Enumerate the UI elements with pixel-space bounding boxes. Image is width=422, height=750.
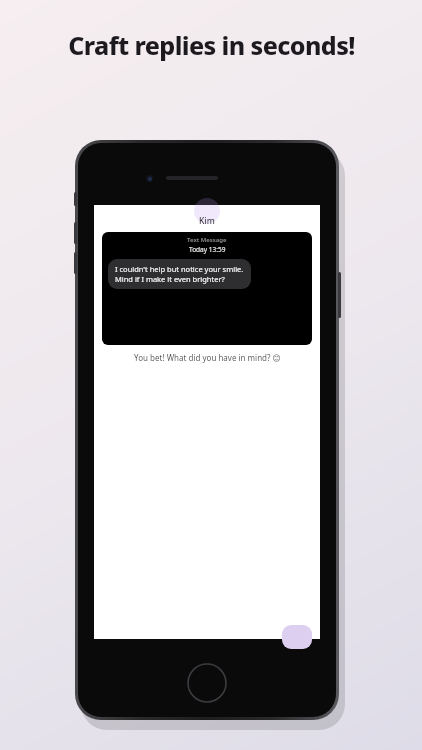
button[interactable]: Text Message <box>102 232 312 345</box>
staticText: Kim <box>199 215 215 227</box>
staticText: I couldn't help but notice your smile. M… <box>115 264 244 284</box>
button[interactable]: You bet! What did you have in mind? 😊 <box>102 352 312 363</box>
staticText: You bet! What did you have in mind? 😊 <box>134 352 281 363</box>
staticText: Craft replies in seconds! <box>68 28 355 62</box>
button[interactable]: Home <box>187 663 227 703</box>
staticText: Today 13:59 <box>189 245 226 254</box>
button[interactable]: Generate reply <box>282 625 312 649</box>
staticText: Text Message <box>187 236 227 244</box>
button[interactable]: Kim <box>94 213 320 229</box>
